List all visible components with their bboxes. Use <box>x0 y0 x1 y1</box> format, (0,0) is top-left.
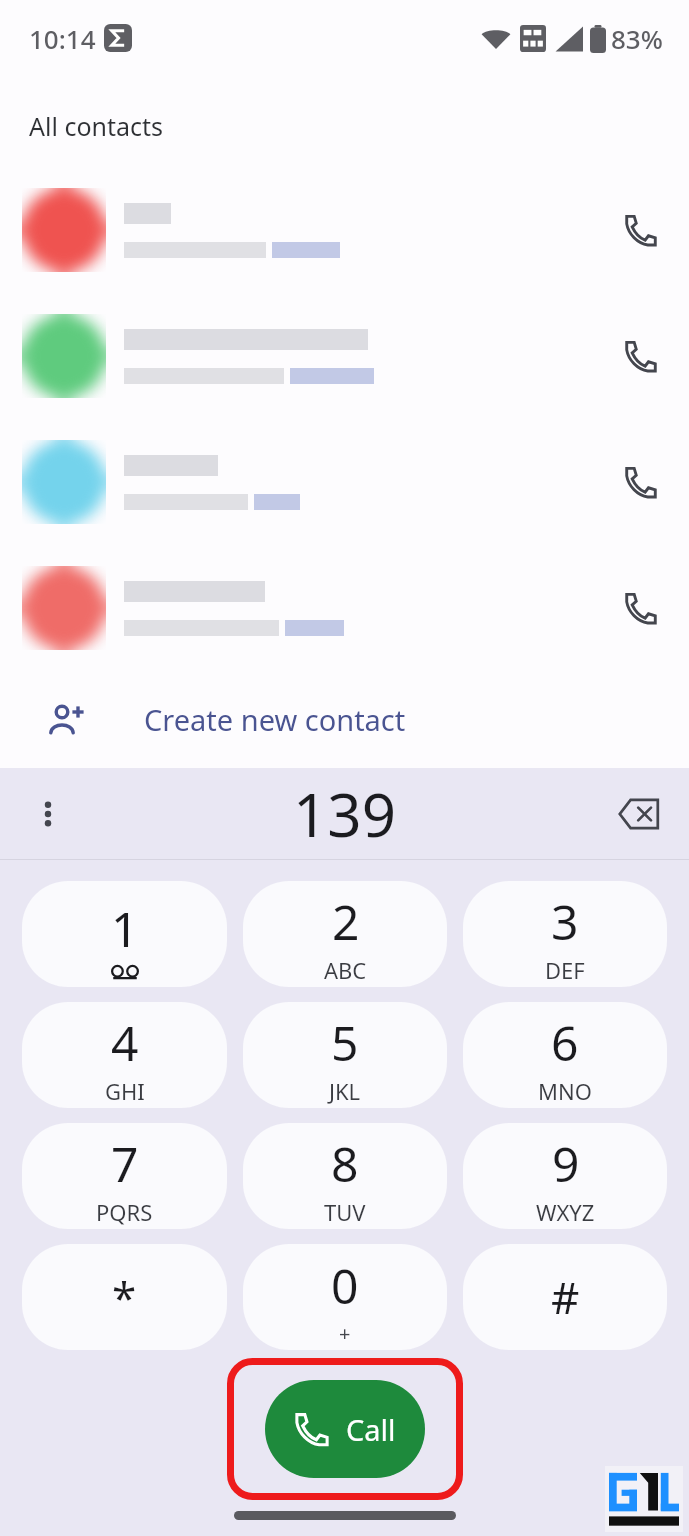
button[interactable]: 9 <box>463 1123 667 1229</box>
button[interactable]: 0 <box>243 1244 447 1350</box>
staticText: 6 <box>551 1010 579 1075</box>
button[interactable]: # <box>463 1244 667 1350</box>
button[interactable]: Call contact <box>593 167 689 293</box>
staticText: 139 <box>293 773 396 855</box>
staticText: 8 <box>331 1131 359 1196</box>
staticText: 3 <box>551 889 579 954</box>
staticText: TUV <box>324 1197 366 1227</box>
staticText: 9 <box>552 1131 580 1196</box>
button[interactable]: Call contact <box>593 419 689 545</box>
button[interactable]: Call contact <box>593 545 689 671</box>
button[interactable]: Call contact <box>593 293 689 419</box>
button[interactable]: Create new contact <box>0 671 689 768</box>
staticText: 83% <box>611 21 663 56</box>
button[interactable]: 6 <box>463 1002 667 1108</box>
button[interactable]: Call <box>265 1380 425 1478</box>
button[interactable]: More options <box>22 788 74 840</box>
staticText: 7 <box>111 1131 139 1196</box>
staticText: * <box>112 1267 137 1327</box>
button[interactable]: 1 <box>22 881 227 987</box>
button[interactable]: 7 <box>22 1123 227 1229</box>
button[interactable]: 5 <box>243 1002 447 1108</box>
button[interactable]: Backspace <box>611 786 667 842</box>
staticText: GHI <box>105 1076 145 1106</box>
staticText: Create new contact <box>144 700 406 739</box>
staticText: 4 <box>111 1010 139 1075</box>
staticText: MNO <box>538 1076 592 1106</box>
staticText: JKL <box>329 1076 361 1106</box>
button[interactable]: 8 <box>243 1123 447 1229</box>
staticText: PQRS <box>96 1197 153 1227</box>
staticText: Call <box>346 1410 396 1449</box>
button[interactable]: Call contact <box>0 419 689 545</box>
staticText: WXYZ <box>536 1197 595 1227</box>
staticText: ABC <box>324 955 367 985</box>
button[interactable]: 3 <box>463 881 667 987</box>
button[interactable]: 2 <box>243 881 447 987</box>
staticText: + <box>339 1320 351 1347</box>
button[interactable]: * <box>22 1244 227 1350</box>
button[interactable]: Call contact <box>0 167 689 293</box>
button[interactable]: Call contact <box>0 293 689 419</box>
staticText: 0 <box>331 1253 359 1318</box>
staticText: 10:14 <box>29 21 96 56</box>
button[interactable]: 4 <box>22 1002 227 1108</box>
staticText: DEF <box>545 955 585 985</box>
staticText: 1 <box>111 896 139 961</box>
button[interactable]: Call contact <box>0 545 689 671</box>
staticText: All contacts <box>29 109 164 143</box>
staticText: 5 <box>331 1010 359 1075</box>
staticText: 2 <box>332 889 360 954</box>
staticText: # <box>551 1267 580 1327</box>
